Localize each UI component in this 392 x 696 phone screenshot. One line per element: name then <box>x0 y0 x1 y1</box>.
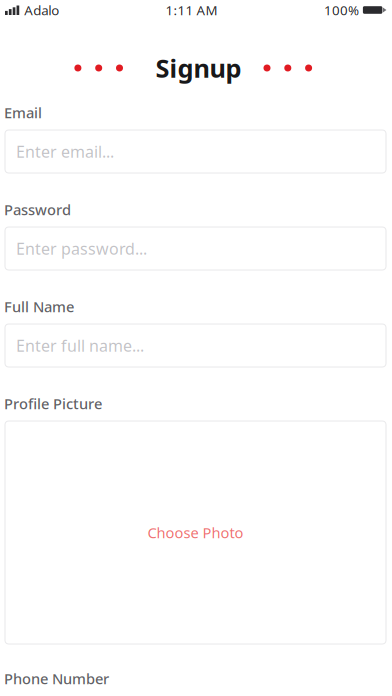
staticText: 1:11 AM <box>166 1 218 19</box>
button[interactable]: Choose Photo <box>5 421 386 644</box>
button[interactable]: Enter password... <box>5 227 386 270</box>
button[interactable]: Enter email... <box>5 130 386 173</box>
staticText: Profile Picture <box>4 394 102 413</box>
staticText: Password <box>4 200 71 219</box>
staticText: Enter full name... <box>16 335 144 356</box>
staticText: Signup <box>155 51 241 85</box>
button[interactable]: Enter full name... <box>5 324 386 367</box>
staticText: Choose Photo <box>147 523 243 542</box>
staticText: Enter email... <box>16 141 114 162</box>
staticText: Full Name <box>4 297 74 316</box>
staticText: Phone Number <box>4 669 109 688</box>
staticText: Email <box>4 103 42 122</box>
staticText: Enter password... <box>16 238 147 259</box>
staticText: Adalo <box>24 1 59 19</box>
staticText: 100% <box>324 1 359 19</box>
